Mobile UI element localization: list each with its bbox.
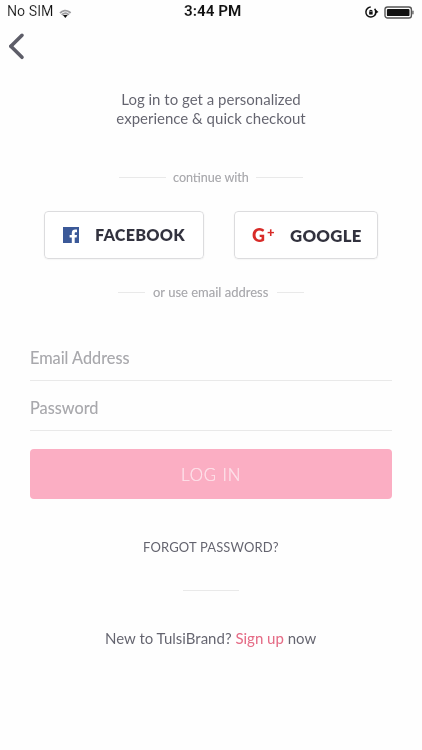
button[interactable]: FORGOT PASSWORD? xyxy=(133,535,289,559)
button[interactable]: New to TulsiBrand? Sign up now xyxy=(105,629,317,647)
staticText: New to TulsiBrand? Sign up now xyxy=(105,629,317,647)
staticText: LOG IN xyxy=(181,464,242,484)
staticText: No SIM xyxy=(7,3,54,20)
button[interactable]: FACEBOOK xyxy=(44,211,204,259)
staticText: Log in to get a personalized experience … xyxy=(0,90,422,128)
staticText: Email Address xyxy=(30,348,130,368)
staticText: FORGOT PASSWORD? xyxy=(143,539,279,555)
button[interactable]: Back xyxy=(0,25,44,67)
staticText: GOOGLE xyxy=(290,225,362,245)
button[interactable]: G xyxy=(234,211,378,259)
staticText: continue with xyxy=(173,170,249,185)
staticText: Password xyxy=(30,398,99,418)
staticText: 3:44 PM xyxy=(184,2,242,20)
staticText: FACEBOOK xyxy=(95,225,186,245)
staticText: + xyxy=(267,224,275,240)
staticText: G xyxy=(252,224,266,246)
staticText: or use email address xyxy=(153,284,269,300)
button[interactable]: LOG IN xyxy=(30,449,392,499)
